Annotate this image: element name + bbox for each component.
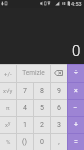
staticText: +: [74, 121, 78, 129]
button[interactable]: 3: [50, 116, 67, 133]
button[interactable]: 8: [33, 82, 50, 99]
staticText: (): [22, 138, 27, 146]
staticText: 7: [23, 87, 27, 95]
staticText: π: [6, 104, 10, 111]
staticText: Temizle: [22, 69, 45, 77]
staticText: ,: [58, 138, 60, 146]
button[interactable]: 7: [16, 82, 33, 99]
button[interactable]: Temizle: [16, 64, 50, 82]
staticText: ×: [74, 87, 78, 95]
button[interactable]: 1: [16, 116, 33, 133]
button[interactable]: ,: [50, 133, 67, 150]
button[interactable]: π: [0, 99, 16, 116]
staticText: −: [73, 104, 78, 112]
staticText: 14:53: [68, 1, 82, 7]
staticText: +/-: [4, 70, 12, 77]
staticText: 8: [40, 87, 44, 95]
staticText: 6: [57, 104, 61, 112]
button[interactable]: =: [67, 133, 84, 150]
button[interactable]: x√y: [0, 82, 16, 99]
staticText: 0: [40, 138, 44, 146]
staticText: x: [5, 121, 8, 128]
staticText: ÷: [74, 69, 78, 77]
button[interactable]: ÷: [67, 64, 84, 82]
staticText: 4: [23, 104, 27, 112]
button[interactable]: +/-: [0, 64, 16, 82]
button[interactable]: 2: [33, 116, 50, 133]
button[interactable]: 0: [33, 133, 50, 150]
staticText: 1: [23, 121, 27, 129]
staticText: 5: [40, 104, 44, 112]
button[interactable]: 4: [16, 99, 33, 116]
button[interactable]: Backspace: [50, 64, 67, 82]
button[interactable]: +: [67, 116, 84, 133]
button[interactable]: %: [0, 133, 16, 150]
button[interactable]: ×: [67, 82, 84, 99]
staticText: %: [6, 138, 11, 145]
button[interactable]: (): [16, 133, 33, 150]
staticText: 2: [40, 121, 44, 129]
staticText: =: [74, 138, 78, 146]
button[interactable]: −: [67, 99, 84, 116]
staticText: y: [8, 120, 11, 126]
staticText: 9: [57, 87, 61, 95]
button[interactable]: 6: [50, 99, 67, 116]
staticText: 3: [57, 121, 61, 129]
button[interactable]: 5: [33, 99, 50, 116]
button[interactable]: 9: [50, 82, 67, 99]
button[interactable]: x: [0, 116, 16, 133]
staticText: x√y: [3, 87, 13, 94]
staticText: 0: [72, 42, 81, 60]
